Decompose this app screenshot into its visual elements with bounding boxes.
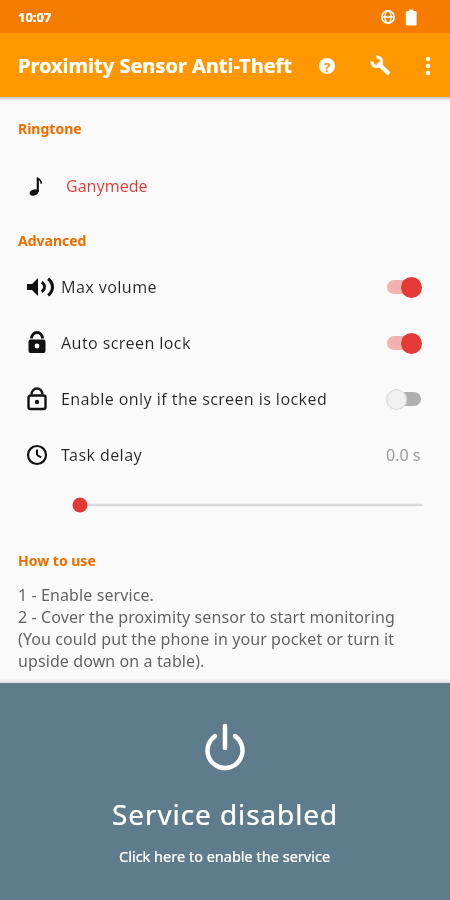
staticText: Auto screen lock: [61, 332, 191, 354]
staticText: Ganymede: [66, 175, 148, 197]
staticText: How to use: [18, 551, 96, 570]
staticText: Proximity Sensor Anti-Theft: [18, 52, 293, 79]
staticText: Task delay: [61, 444, 143, 466]
staticText: Enable only if the screen is locked: [61, 388, 328, 410]
staticText: Ringtone: [18, 119, 82, 138]
button[interactable]: ?: [311, 50, 342, 81]
staticText: 1 - Enable service. 2 - Cover the proxim…: [18, 584, 395, 672]
button[interactable]: [386, 388, 422, 410]
button[interactable]: Max volume: [0, 259, 450, 315]
staticText: Max volume: [61, 276, 157, 298]
button[interactable]: [386, 276, 422, 298]
staticText: ?: [324, 58, 331, 74]
button[interactable]: [0, 483, 450, 525]
button[interactable]: [365, 50, 396, 81]
staticText: Service disabled: [112, 795, 339, 833]
button[interactable]: Enable only if the screen is locked: [0, 371, 450, 427]
button[interactable]: [412, 50, 443, 81]
button[interactable]: Auto screen lock: [0, 315, 450, 371]
button[interactable]: [386, 332, 422, 354]
staticText: Click here to enable the service: [119, 846, 331, 866]
button[interactable]: Ganymede: [0, 164, 450, 208]
button[interactable]: Task delay: [0, 427, 450, 483]
staticText: 0.0 s: [386, 444, 421, 466]
staticText: 10:07: [18, 8, 52, 26]
staticText: Advanced: [18, 231, 87, 250]
button[interactable]: Service disabled: [0, 683, 450, 900]
